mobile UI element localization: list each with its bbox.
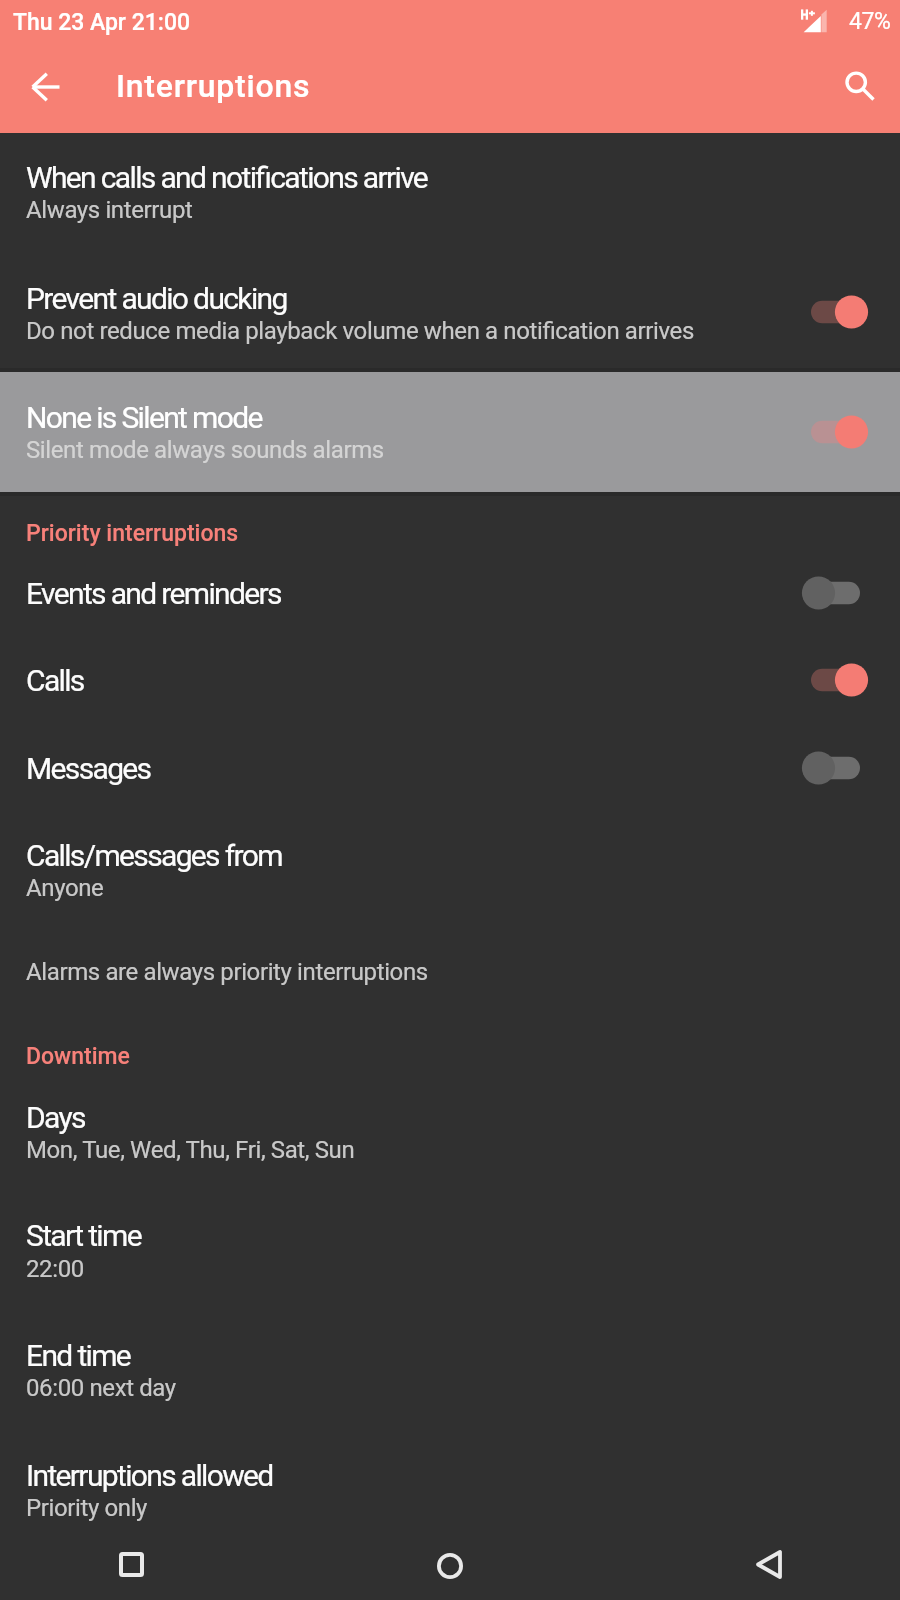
staticText: Events and reminders (26, 576, 281, 611)
button[interactable]: Events and reminders (0, 558, 900, 628)
button[interactable]: Messages (0, 734, 900, 804)
staticText: Priority only (26, 1494, 148, 1522)
button[interactable]: When calls and notifications arrive (0, 140, 900, 252)
button[interactable]: Home (414, 1528, 486, 1594)
button[interactable]: Switch off (802, 740, 874, 796)
button[interactable]: Calls (0, 646, 900, 716)
staticText: 22:00 (26, 1255, 84, 1283)
staticText: Messages (26, 751, 151, 786)
button[interactable]: Back (732, 1528, 804, 1594)
button[interactable]: Switch on (802, 652, 874, 708)
button[interactable]: Recent apps (95, 1528, 167, 1594)
staticText: Calls (26, 663, 84, 698)
staticText: Interruptions (116, 67, 311, 105)
staticText: When calls and notifications arrive (26, 160, 428, 195)
staticText: Interruptions allowed (26, 1458, 273, 1493)
button[interactable]: Switch off (802, 565, 874, 621)
staticText: Do not reduce media playback volume when… (26, 317, 694, 345)
button[interactable]: None is Silent mode (0, 372, 900, 492)
staticText: 06:00 next day (26, 1374, 176, 1402)
button[interactable]: Start time (0, 1198, 900, 1306)
button[interactable]: Calls/messages from (0, 818, 900, 926)
staticText: Calls/messages from (26, 838, 282, 873)
staticText: Silent mode always sounds alarms (26, 436, 384, 464)
staticText: Always interrupt (26, 196, 193, 224)
staticText: Mon, Tue, Wed, Thu, Fri, Sat, Sun (26, 1136, 355, 1164)
staticText: Prevent audio ducking (26, 281, 287, 316)
button[interactable]: End time (0, 1318, 900, 1426)
staticText: Thu 23 Apr 21:00 (13, 9, 191, 36)
button[interactable]: Switch on (802, 284, 874, 340)
staticText: Priority interruptions (26, 520, 239, 547)
staticText: Alarms are always priority interruptions (26, 958, 428, 986)
button[interactable]: Navigate up (22, 54, 70, 102)
staticText: 47% (849, 8, 891, 35)
button[interactable]: Switch on (802, 404, 874, 460)
staticText: End time (26, 1338, 131, 1373)
button[interactable]: Interruptions allowed (0, 1438, 900, 1522)
button[interactable]: Days (0, 1080, 900, 1188)
staticText: Days (26, 1100, 85, 1135)
button[interactable]: Search (832, 54, 880, 102)
staticText: None is Silent mode (26, 400, 262, 435)
staticText: Downtime (26, 1043, 130, 1070)
staticText: Anyone (26, 874, 104, 902)
button[interactable]: Prevent audio ducking (0, 258, 900, 368)
staticText: Start time (26, 1218, 141, 1253)
